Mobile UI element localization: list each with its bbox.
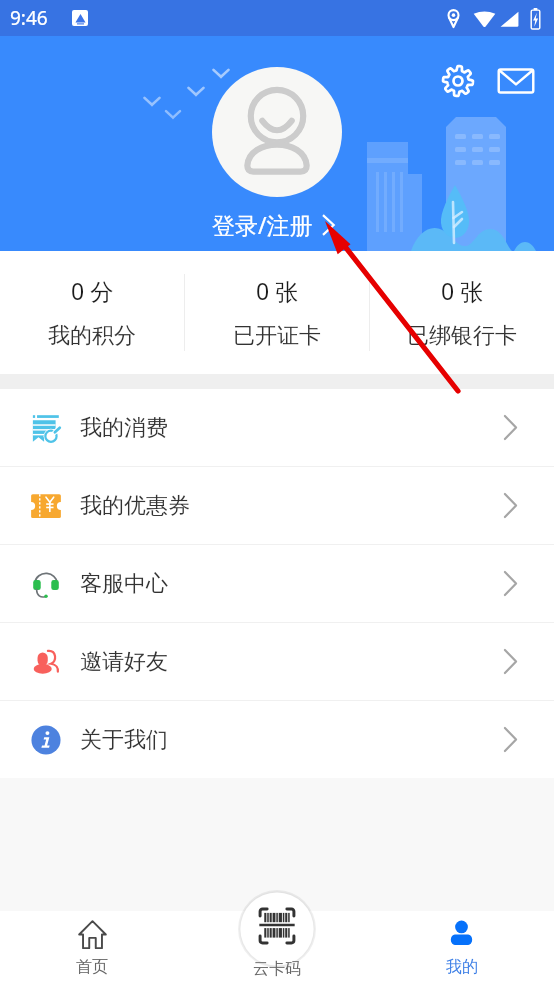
button[interactable]: 客服中心 [0, 545, 554, 622]
staticText: 已开证卡 [233, 322, 321, 350]
button[interactable]: 首页 [0, 911, 184, 984]
staticText: 我的 [446, 957, 478, 977]
staticText: 我的优惠券 [80, 492, 190, 520]
button[interactable]: 消息 Messages [495, 60, 537, 102]
button[interactable]: 0 张 [370, 251, 554, 374]
button[interactable]: 我的消费 [0, 389, 554, 466]
staticText: 我的消费 [80, 414, 168, 442]
staticText: 关于我们 [80, 726, 168, 754]
staticText: 邀请好友 [80, 648, 168, 676]
staticText: 0 张 [441, 275, 484, 306]
button[interactable]: 关于我们 [0, 701, 554, 778]
staticText: 已绑银行卡 [407, 322, 517, 350]
button[interactable]: 云卡码 扫码 [238, 890, 316, 968]
staticText: 9:46 [10, 5, 48, 31]
button[interactable]: 我的优惠券 [0, 467, 554, 544]
button[interactable]: 邀请好友 [0, 623, 554, 700]
staticText: 首页 [76, 957, 108, 977]
staticText: 0 张 [256, 275, 299, 306]
staticText: 云卡码 [253, 959, 301, 979]
button[interactable]: 设置 Settings [437, 60, 479, 102]
button[interactable]: 登录/注册 [212, 209, 342, 240]
staticText: 0 分 [71, 275, 114, 306]
button[interactable]: 我的 [369, 911, 554, 984]
button[interactable]: 0 张 [185, 251, 369, 374]
staticText: 我的积分 [48, 322, 136, 350]
button[interactable]: 0 分 [0, 251, 184, 374]
staticText: 登录/注册 [212, 209, 313, 240]
staticText: 客服中心 [80, 570, 168, 598]
